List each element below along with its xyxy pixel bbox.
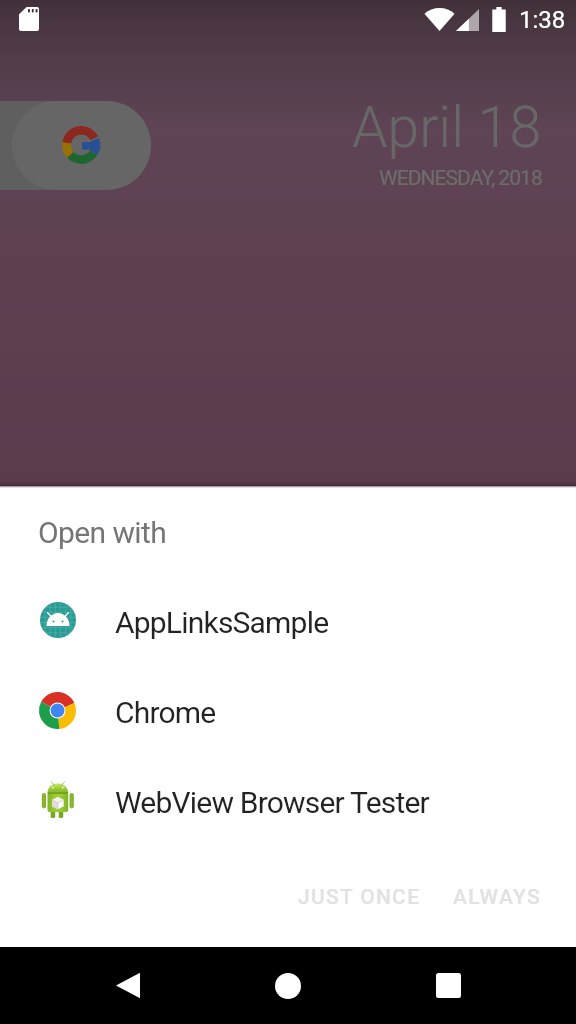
staticText: 1:38 bbox=[519, 6, 566, 34]
staticText: AppLinksSample bbox=[115, 605, 329, 640]
button[interactable]: Back bbox=[92, 947, 164, 1024]
button[interactable]: AppLinksSample bbox=[0, 575, 576, 665]
button[interactable]: WebView Browser Tester bbox=[0, 755, 576, 845]
button[interactable]: Google Search bbox=[12, 101, 151, 190]
button[interactable]: Chrome bbox=[0, 665, 576, 755]
button[interactable]: JUST ONCE bbox=[282, 873, 437, 922]
staticText: Chrome bbox=[115, 695, 216, 730]
staticText: WebView Browser Tester bbox=[115, 785, 429, 820]
staticText: Open with bbox=[38, 515, 167, 550]
button[interactable]: Recents bbox=[412, 947, 484, 1024]
button[interactable]: Home bbox=[252, 947, 324, 1024]
staticText: ALWAYS bbox=[453, 885, 541, 910]
staticText: WEDNESDAY, 2018 bbox=[379, 166, 542, 191]
staticText: JUST ONCE bbox=[298, 885, 421, 910]
staticText: April 18 bbox=[352, 94, 542, 161]
button[interactable]: ALWAYS bbox=[437, 873, 557, 922]
